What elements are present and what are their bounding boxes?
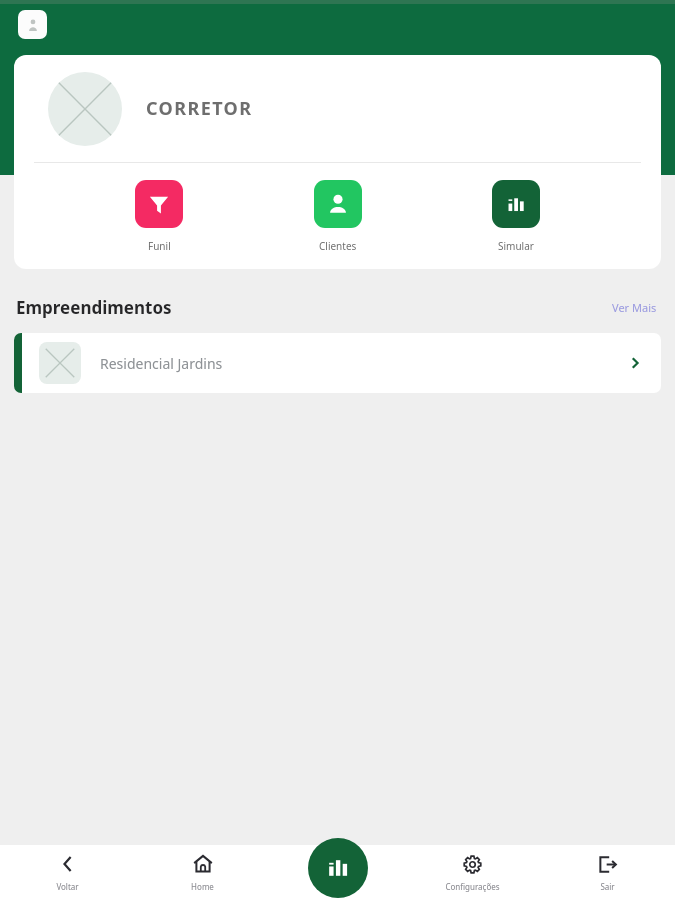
button[interactable]: Residencial Jardins xyxy=(14,333,661,393)
button[interactable]: Clientes xyxy=(304,180,372,253)
staticText: Sair xyxy=(600,881,615,892)
button[interactable]: Home xyxy=(135,845,270,900)
staticText: Clientes xyxy=(319,239,357,253)
button[interactable]: Configurações xyxy=(405,845,540,900)
button[interactable]: Funil xyxy=(125,180,193,253)
button[interactable]: Voltar xyxy=(0,845,135,900)
staticText: Configurações xyxy=(445,881,500,892)
staticText: Funil xyxy=(148,239,171,253)
button[interactable]: Simular xyxy=(482,180,550,253)
button[interactable]: Menu xyxy=(18,10,47,39)
button[interactable]: CORRETOR xyxy=(14,55,661,162)
staticText: Home xyxy=(191,881,214,892)
staticText: Voltar xyxy=(56,881,79,892)
staticText: Residencial Jardins xyxy=(100,354,223,373)
button[interactable]: Simular xyxy=(308,838,368,898)
other: Voltar xyxy=(57,853,79,875)
button[interactable]: Sair xyxy=(540,845,675,900)
staticText: Empreendimentos xyxy=(16,296,172,319)
staticText: Simular xyxy=(498,239,534,253)
button[interactable]: Ver Mais xyxy=(612,300,657,315)
staticText: Ver Mais xyxy=(612,300,657,315)
staticText: CORRETOR xyxy=(146,96,253,121)
